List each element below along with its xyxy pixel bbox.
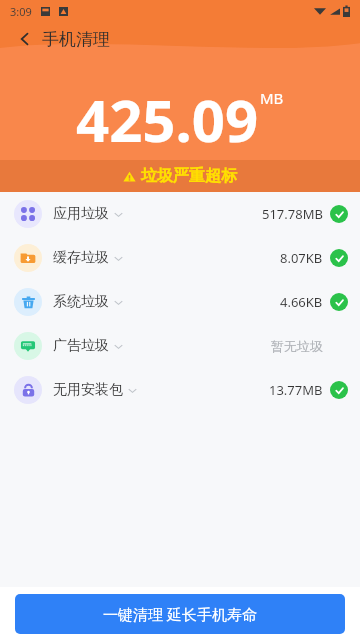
button[interactable]: Selected: [330, 205, 348, 223]
button[interactable]: 无用安装包: [0, 368, 360, 412]
staticText: 广告垃圾: [53, 337, 109, 355]
button[interactable]: 应用垃圾: [0, 192, 360, 236]
button[interactable]: 广告垃圾: [0, 324, 360, 368]
staticText: 应用垃圾: [53, 205, 109, 223]
staticText: 缓存垃圾: [53, 249, 109, 267]
staticText: 垃圾严重超标: [141, 166, 237, 186]
button[interactable]: Back: [10, 24, 40, 54]
staticText: 425.09: [76, 80, 259, 159]
staticText: 系统垃圾: [53, 293, 109, 311]
button[interactable]: Selected: [330, 293, 348, 311]
staticText: 手机清理: [42, 29, 110, 50]
button[interactable]: Selected: [330, 249, 348, 267]
button[interactable]: 缓存垃圾: [0, 236, 360, 280]
staticText: 8.07KB: [280, 249, 323, 267]
staticText: 517.78MB: [262, 205, 323, 223]
staticText: MB: [260, 88, 284, 108]
button[interactable]: Selected: [330, 381, 348, 399]
staticText: 无用安装包: [53, 381, 123, 399]
button[interactable]: 系统垃圾: [0, 280, 360, 324]
staticText: 一键清理 延长手机寿命: [103, 604, 257, 624]
button[interactable]: 一键清理 延长手机寿命: [15, 594, 345, 634]
staticText: 3:09: [10, 4, 32, 19]
staticText: 4.66KB: [280, 293, 323, 311]
staticText: 暂无垃圾: [271, 338, 323, 354]
staticText: 13.77MB: [269, 381, 323, 399]
